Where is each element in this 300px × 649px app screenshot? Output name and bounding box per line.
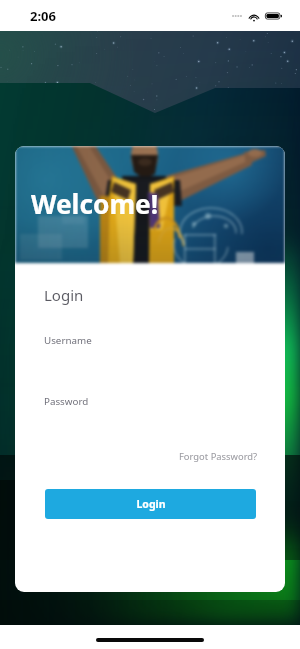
staticText: Password (44, 395, 89, 408)
button[interactable]: Login (45, 489, 256, 519)
staticText: Login (44, 285, 84, 305)
staticText: Welcome! (31, 186, 159, 222)
button[interactable]: Forgot Password? (179, 450, 258, 463)
button[interactable]: Password (44, 395, 255, 409)
staticText: Login (136, 497, 166, 511)
staticText: 2:06 (30, 7, 56, 25)
button[interactable]: Username (44, 334, 255, 348)
staticText: Username (44, 334, 92, 347)
staticText: Forgot Password? (179, 450, 258, 463)
